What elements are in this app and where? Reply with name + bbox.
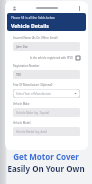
button[interactable]: More options [76,5,83,12]
button[interactable]: Vehicle Model (eg. Axio) [13,127,80,136]
staticText: TBD [16,73,22,77]
staticText: Select Year of Manufacture [16,92,52,96]
button[interactable]: Menu [11,5,18,12]
staticText: Easily On Your Own [7,163,85,174]
button[interactable]: Please fill in all the fields below [7,13,86,31]
staticText: Year Of Manufacture (Optional) [13,83,53,87]
staticText: John Doe [16,45,28,49]
staticText: Vehicle Make (eg. Toyota) [16,111,50,115]
button[interactable]: TBD [13,70,80,79]
staticText: Vehicle Model [13,121,31,125]
button[interactable]: Vehicle Make (eg. Toyota) [13,108,80,117]
staticText: Vehicle Model (eg. Axio) [16,130,48,134]
button[interactable]: Is the vehicle registered with RFID [13,56,80,60]
button[interactable]: Select Year of Manufacture [13,89,80,98]
button[interactable]: John Doe [13,42,80,51]
staticText: Please fill in all the fields below [11,16,55,20]
staticText: Vehicle Make [13,102,30,106]
staticText: Insured Name (As On Officer Email) [13,36,58,40]
staticText: Is the vehicle registered with RFID [30,56,73,60]
staticText: Registration Number [13,64,40,68]
staticText: Get Motor Cover [13,151,79,162]
staticText: Vehicle Details [11,22,49,29]
